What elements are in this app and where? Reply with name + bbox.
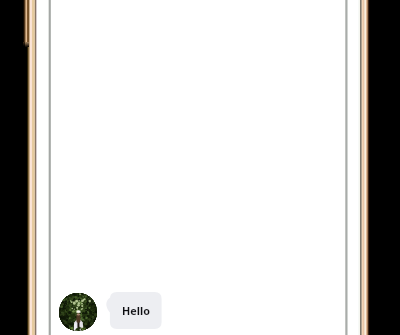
staticText: Hello: [122, 303, 150, 318]
button[interactable]: Sender profile photo: [59, 293, 97, 331]
button[interactable]: Hello: [106, 292, 162, 329]
